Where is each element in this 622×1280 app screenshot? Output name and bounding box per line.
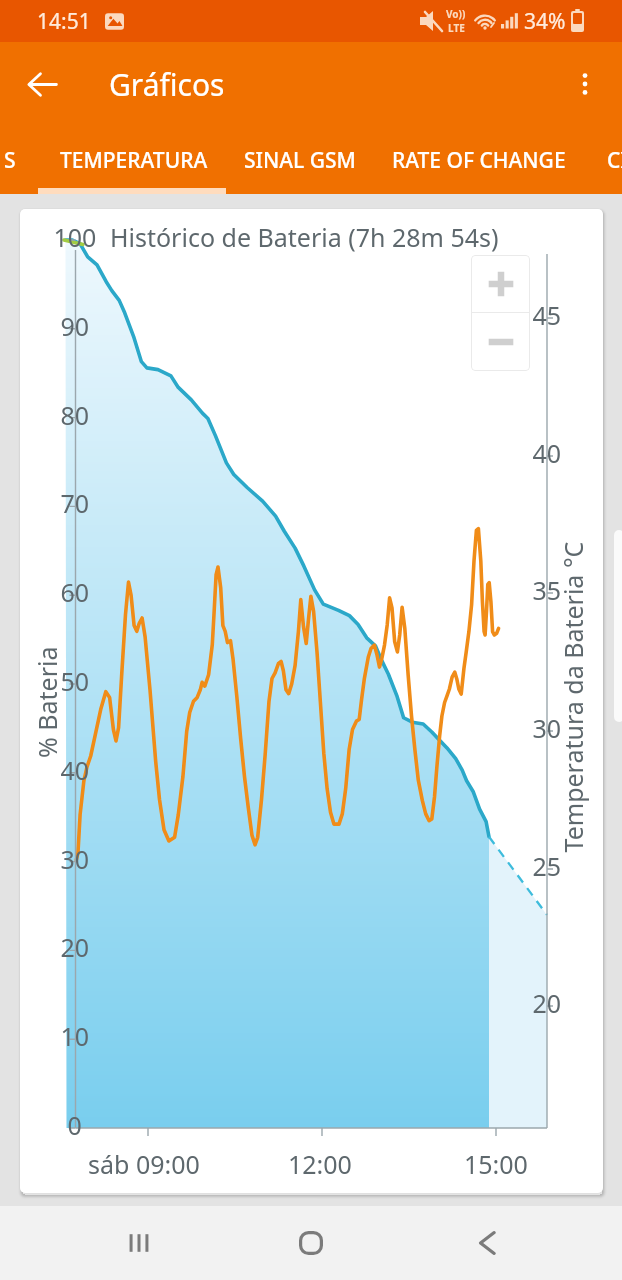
staticText: RATE OF CHANGE <box>392 146 566 175</box>
button[interactable]: Back <box>447 1206 527 1280</box>
button[interactable]: SINAL GSM <box>228 126 372 194</box>
staticText: S <box>4 146 16 175</box>
button[interactable]: Ciclos <box>607 126 622 194</box>
button[interactable]: Zoom out <box>471 313 530 370</box>
staticText: LTE <box>448 21 465 35</box>
button[interactable]: Estatísticas <box>0 126 16 194</box>
staticText: SINAL GSM <box>244 146 356 175</box>
button[interactable]: Zoom in <box>471 255 530 312</box>
staticText: CI <box>607 146 622 175</box>
button[interactable]: Home <box>271 1206 351 1280</box>
button[interactable]: Back <box>17 59 67 109</box>
button[interactable]: More options <box>560 59 610 109</box>
staticText: Vo)) <box>446 7 466 21</box>
button[interactable]: Recent apps <box>99 1206 179 1280</box>
button[interactable]: RATE OF CHANGE <box>372 126 586 194</box>
staticText: Gráficos <box>109 64 225 105</box>
staticText: 14:51 <box>37 7 91 36</box>
button[interactable]: TEMPERATURA <box>40 126 228 194</box>
staticText: 34% <box>524 7 566 36</box>
staticText: TEMPERATURA <box>60 146 208 175</box>
